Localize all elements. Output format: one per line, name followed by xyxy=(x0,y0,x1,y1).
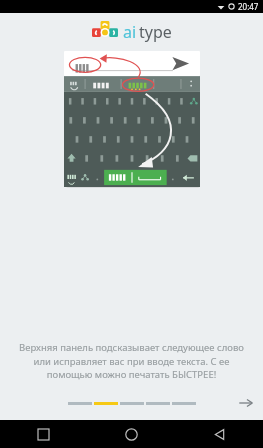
button[interactable]: Next xyxy=(235,394,257,412)
staticText: 20:47 xyxy=(238,1,259,12)
button[interactable]: Back xyxy=(175,420,263,448)
staticText: ai xyxy=(123,21,137,43)
staticText: Верхняя панель подсказывает следующее сл… xyxy=(12,341,251,380)
staticText: type xyxy=(139,21,172,43)
button[interactable]: Recent apps xyxy=(0,420,87,448)
button[interactable]: Home xyxy=(87,420,175,448)
